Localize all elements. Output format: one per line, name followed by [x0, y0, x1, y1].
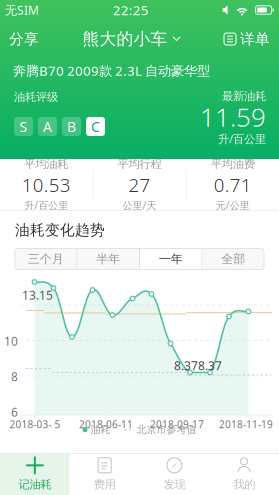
staticText: 22:25 [113, 1, 149, 19]
staticText: 27 [128, 172, 150, 197]
staticText: 油耗评级 [14, 90, 58, 104]
staticText: 8.37 [198, 357, 222, 374]
staticText: A [43, 117, 52, 136]
staticText: B [67, 117, 76, 136]
button[interactable]: 发现 [139, 454, 209, 495]
button[interactable]: 记油耗 [0, 454, 70, 495]
staticText: 三个月 [28, 251, 64, 266]
staticText: 8 [11, 368, 18, 385]
staticText: 我的 [233, 477, 255, 492]
staticText: 一年 [159, 251, 183, 266]
staticText: 6 [11, 404, 18, 420]
staticText: 半年 [96, 251, 120, 266]
staticText: 全部 [221, 251, 245, 266]
staticText: 11.59 [200, 99, 266, 134]
staticText: 2018-06-11 [79, 417, 133, 431]
staticText: S [19, 117, 27, 136]
button[interactable]: 一年 [140, 248, 201, 269]
staticText: 详单 [240, 30, 270, 48]
staticText: 2018-03- 5 [9, 417, 60, 431]
staticText: 平均油费 [211, 157, 255, 171]
staticText: 10.53 [22, 172, 71, 197]
staticText: 无SIM [5, 2, 39, 18]
staticText: 元/公里 [216, 198, 250, 212]
staticText: 最新油耗 [222, 89, 266, 103]
staticText: 北京市参考值 [133, 423, 196, 436]
button[interactable]: 我的 [209, 454, 279, 495]
staticText: 13.15 [22, 287, 53, 303]
button[interactable]: 费用 [70, 454, 140, 495]
staticText: 8.37 [174, 357, 198, 374]
staticText: 奔腾B70 2009款 2.3L 自动豪华型 [13, 61, 210, 80]
staticText: 10 [4, 333, 18, 349]
staticText: 记油耗 [18, 477, 51, 492]
button[interactable]: 分享 [0, 24, 48, 54]
staticText: 2018-09-17 [150, 417, 204, 431]
staticText: 0.71 [214, 172, 252, 197]
button[interactable]: 熊大的小车 [76, 24, 186, 54]
staticText: 分享 [9, 30, 39, 48]
staticText: 平均行程 [117, 157, 161, 171]
button[interactable]: 三个月 [15, 248, 76, 269]
staticText: 2018-11-19 [219, 417, 273, 431]
staticText: 油耗变化趋势 [15, 221, 105, 239]
staticText: 费用 [94, 477, 116, 492]
staticText: 公里/天 [122, 198, 156, 212]
staticText: 升/百公里 [24, 198, 68, 212]
staticText: 油耗 [87, 423, 110, 436]
staticText: 发现 [163, 477, 185, 492]
staticText: 平均油耗 [24, 157, 68, 171]
staticText: 升/百公里 [218, 131, 266, 146]
button[interactable]: 全部 [202, 248, 264, 269]
button[interactable]: 半年 [77, 248, 139, 269]
staticText: 熊大的小车 [82, 28, 167, 49]
button[interactable]: 详单 [215, 24, 279, 54]
staticText: C [91, 117, 100, 136]
